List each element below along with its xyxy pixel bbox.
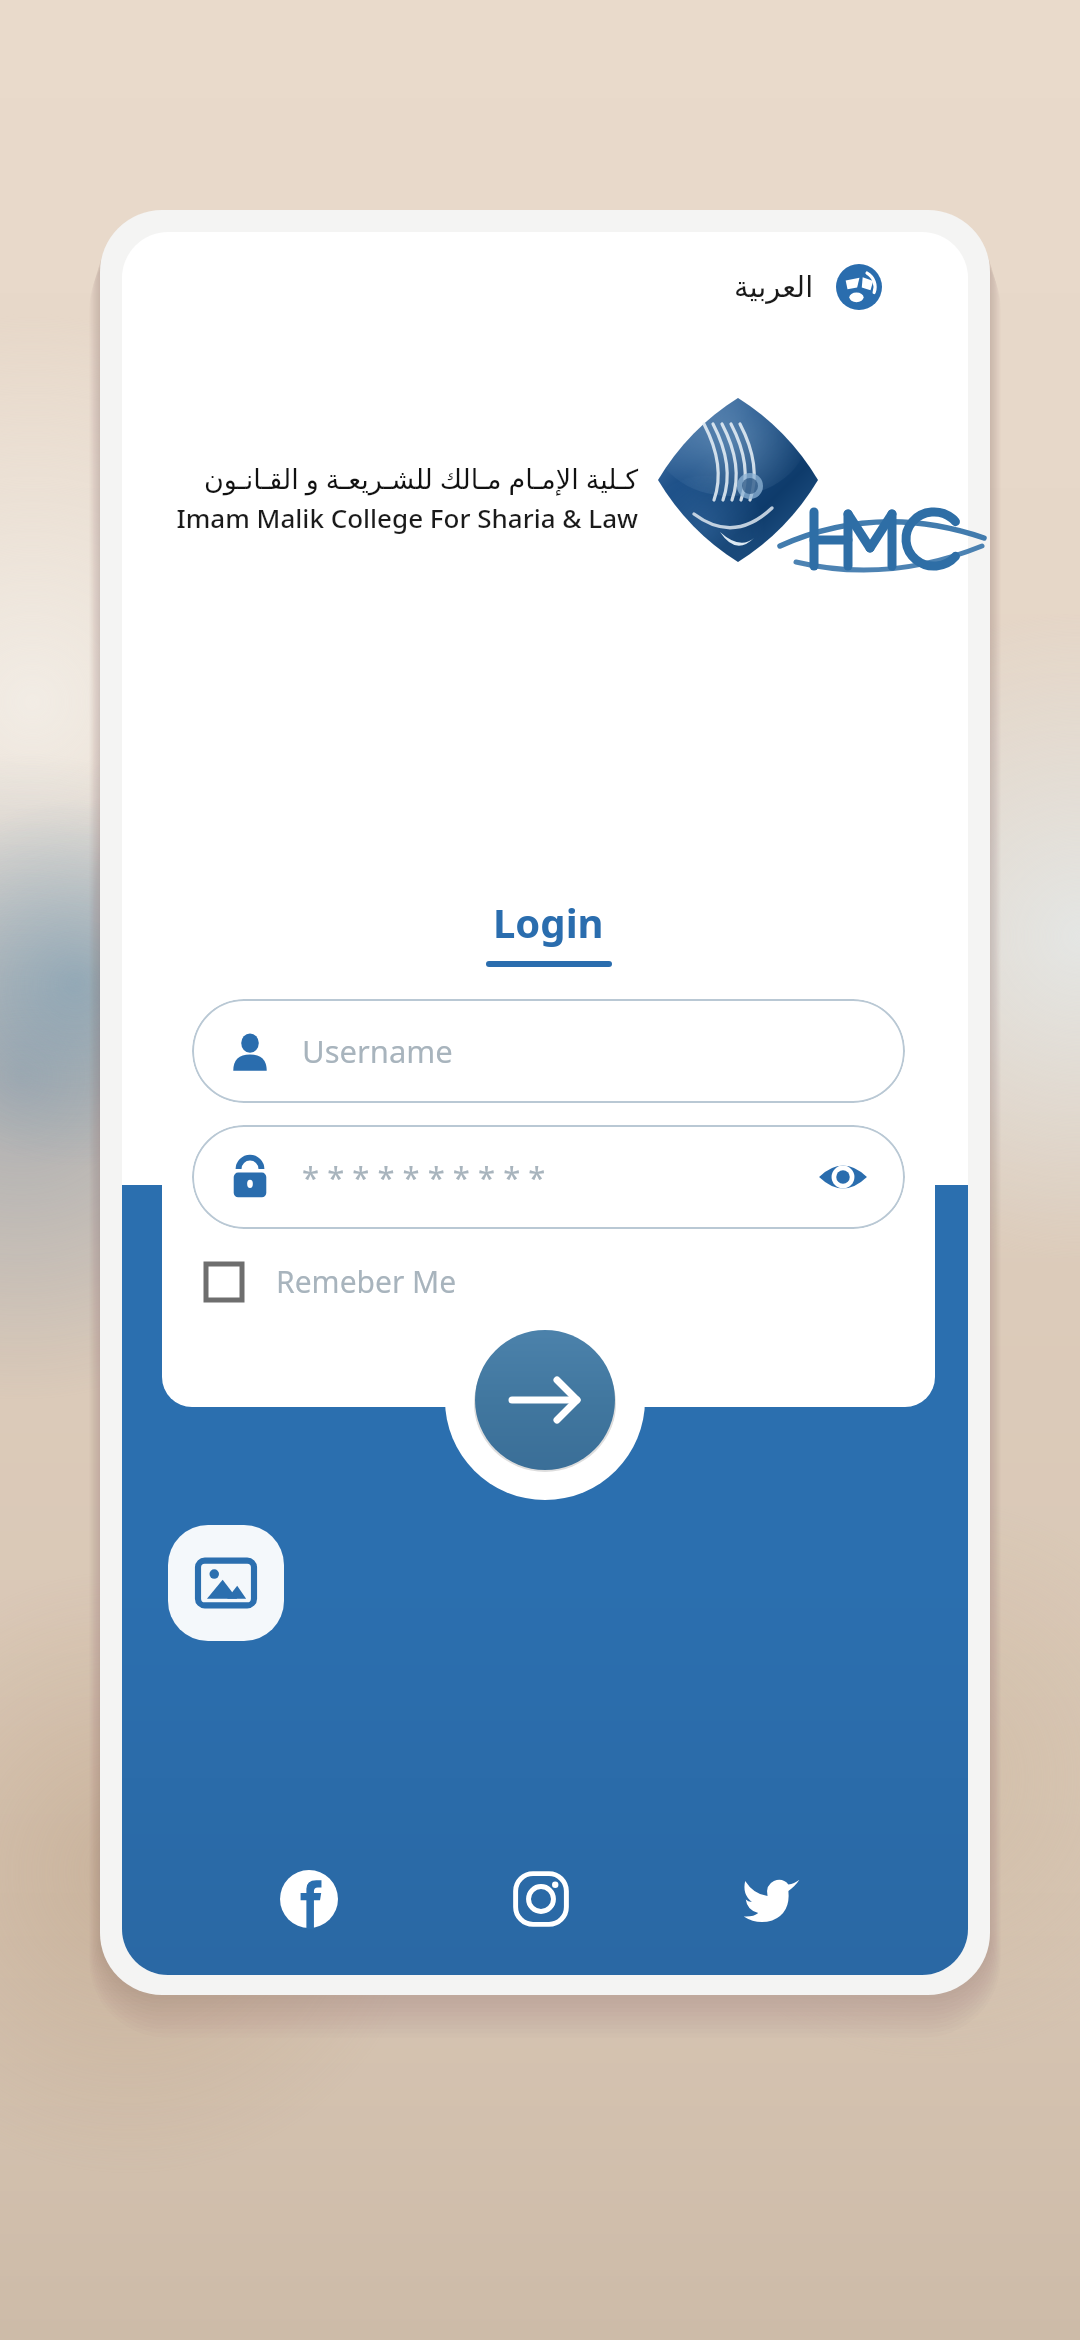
button[interactable]: Remeber Me: [192, 1251, 469, 1312]
staticText: * * * * * * * * * *: [302, 1156, 817, 1198]
staticText: Remeber Me: [276, 1261, 457, 1302]
staticText: Username: [302, 1030, 869, 1072]
button[interactable]: Username field: [192, 999, 905, 1103]
button[interactable]: Login: [481, 893, 616, 951]
button[interactable]: Instagram: [500, 1858, 582, 1940]
button[interactable]: Facebook: [268, 1858, 350, 1940]
button[interactable]: Password field: [192, 1125, 905, 1229]
button[interactable]: Gallery: [168, 1525, 284, 1641]
staticText: Imam Malik College For Sharia & Law: [176, 500, 638, 535]
staticText: كـلية الإمـام مـالك للشـريعـة و القـانـو…: [176, 460, 638, 497]
button[interactable]: Twitter: [730, 1858, 812, 1940]
staticText: العربية: [734, 270, 814, 304]
button[interactable]: العربية: [726, 258, 890, 316]
button[interactable]: Sign in: [473, 1328, 617, 1472]
staticText: Login: [493, 895, 604, 949]
